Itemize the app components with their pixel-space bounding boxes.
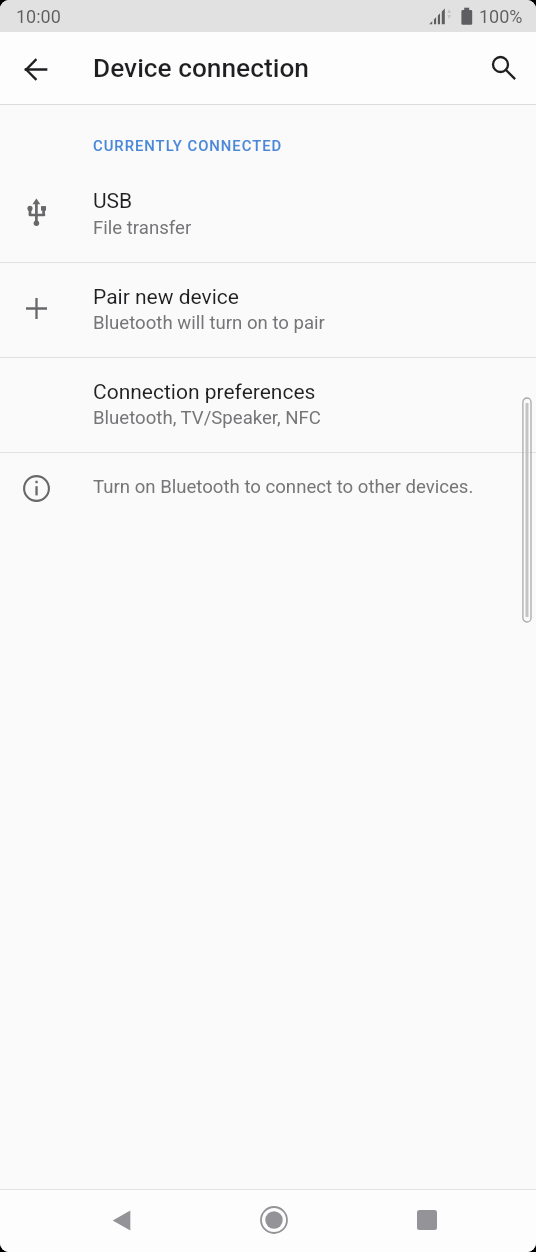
button[interactable]: Back xyxy=(12,45,60,93)
staticText: Turn on Bluetooth to connect to other de… xyxy=(93,476,474,498)
staticText: File transfer xyxy=(93,217,192,239)
button[interactable]: CURRENTLY CONNECTED xyxy=(0,105,536,262)
button[interactable]: Pair new device xyxy=(0,263,536,357)
button[interactable]: Home xyxy=(250,1196,298,1244)
button[interactable]: Back xyxy=(97,1196,145,1244)
staticText: 100% xyxy=(479,6,523,27)
staticText: Connection preferences xyxy=(93,380,316,405)
button[interactable]: Connection preferences xyxy=(0,358,536,452)
button[interactable]: Recents xyxy=(403,1196,451,1244)
button[interactable]: Search xyxy=(480,44,528,92)
staticText: Bluetooth will turn on to pair xyxy=(93,312,325,334)
staticText: USB xyxy=(93,189,133,214)
staticText: Pair new device xyxy=(93,285,239,310)
staticText: Device connection xyxy=(93,53,309,84)
staticText: Bluetooth, TV/Speaker, NFC xyxy=(93,407,321,429)
staticText: CURRENTLY CONNECTED xyxy=(93,137,283,154)
staticText: 10:00 xyxy=(16,6,61,27)
